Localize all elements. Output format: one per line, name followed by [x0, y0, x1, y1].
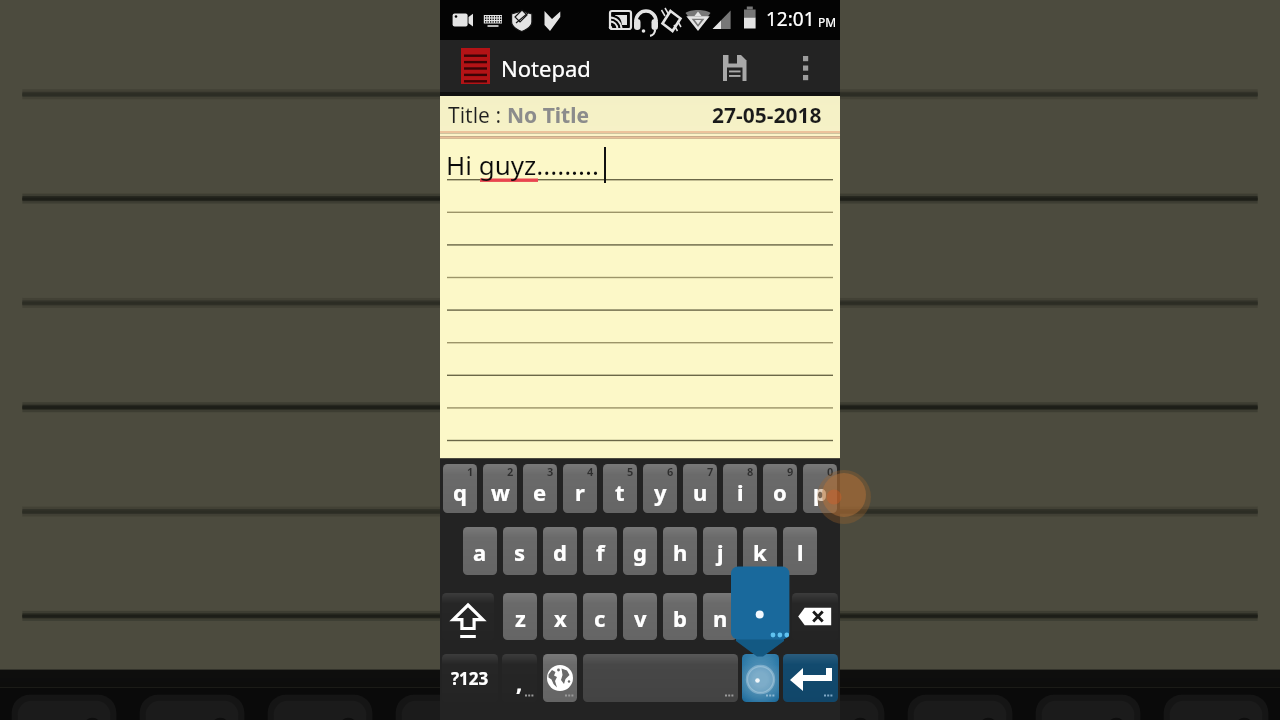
button[interactable]: More options [784, 42, 828, 94]
staticText: Hi guyz......... [446, 147, 599, 182]
staticText: Notepad [501, 53, 591, 83]
button[interactable]: a [463, 527, 497, 575]
staticText: h [673, 537, 688, 567]
button[interactable]: Change language [543, 654, 577, 702]
staticText: p [813, 477, 827, 507]
staticText: 3 [547, 464, 554, 479]
staticText: o [773, 477, 787, 507]
button[interactable]: Symbols [442, 654, 498, 702]
button[interactable]: Enter [783, 654, 838, 702]
button[interactable]: Period [742, 654, 779, 702]
staticText: q [453, 477, 467, 507]
staticText: 4 [587, 464, 594, 479]
staticText: c [594, 603, 606, 633]
button[interactable]: s [503, 527, 537, 575]
staticText: 1 [467, 464, 474, 479]
staticText: k [753, 537, 767, 567]
staticText: 6 [667, 464, 674, 479]
button[interactable]: g [623, 527, 657, 575]
staticText: z [515, 603, 526, 633]
button[interactable]: Title : [440, 99, 840, 132]
staticText: Title : [448, 101, 507, 130]
staticText: u [693, 477, 708, 507]
staticText: j [717, 537, 724, 567]
button[interactable]: m [743, 593, 777, 640]
staticText: r [575, 477, 585, 507]
button[interactable]: o [763, 464, 797, 513]
button[interactable]: q [443, 464, 477, 513]
button[interactable]: r [563, 464, 597, 513]
staticText: t [615, 477, 625, 507]
button[interactable]: z [503, 593, 537, 640]
button[interactable]: p [803, 464, 837, 513]
staticText: y [654, 477, 667, 507]
button[interactable]: j [703, 527, 737, 575]
staticText: e [533, 477, 547, 507]
staticText: 12:01 [766, 6, 815, 32]
button[interactable]: Notepad [454, 42, 704, 94]
staticText: l [797, 537, 804, 567]
staticText: , [516, 667, 523, 697]
button[interactable]: n [703, 593, 737, 640]
staticText: a [473, 537, 487, 567]
button[interactable]: Space [583, 654, 738, 702]
button[interactable]: x [543, 593, 577, 640]
staticText: s [514, 537, 526, 567]
button[interactable]: Comma [502, 654, 537, 702]
staticText: d [553, 537, 567, 567]
staticText: 9 [787, 464, 794, 479]
staticText: v [634, 603, 647, 633]
staticText: x [554, 603, 567, 633]
button[interactable]: c [583, 593, 617, 640]
staticText: 27-05-2018 [712, 101, 822, 130]
button[interactable]: Save note [712, 42, 758, 94]
staticText: b [673, 603, 687, 633]
staticText: m [749, 603, 771, 633]
button[interactable]: k [743, 527, 777, 575]
button[interactable]: h [663, 527, 697, 575]
button[interactable]: Backspace [792, 593, 838, 640]
staticText: 5 [627, 464, 634, 479]
staticText: 2 [507, 464, 514, 479]
button[interactable]: y [643, 464, 677, 513]
staticText: 8 [747, 464, 754, 479]
button[interactable]: w [483, 464, 517, 513]
staticText: PM [818, 14, 837, 30]
staticText: ?123 [451, 667, 489, 690]
staticText: f [596, 537, 605, 567]
button[interactable]: v [623, 593, 657, 640]
staticText: g [633, 537, 647, 567]
button[interactable]: i [723, 464, 757, 513]
button[interactable]: t [603, 464, 637, 513]
button[interactable]: l [783, 527, 817, 575]
button[interactable]: d [543, 527, 577, 575]
staticText: No Title [507, 101, 589, 130]
staticText: 0 [827, 464, 834, 479]
staticText: n [713, 603, 728, 633]
staticText: i [737, 477, 744, 507]
button[interactable]: Shift [442, 593, 494, 640]
staticText: w [491, 477, 510, 507]
button[interactable]: Note text [440, 139, 840, 458]
button[interactable]: e [523, 464, 557, 513]
button[interactable]: u [683, 464, 717, 513]
staticText: 7 [707, 464, 714, 479]
button[interactable]: f [583, 527, 617, 575]
button[interactable]: b [663, 593, 697, 640]
